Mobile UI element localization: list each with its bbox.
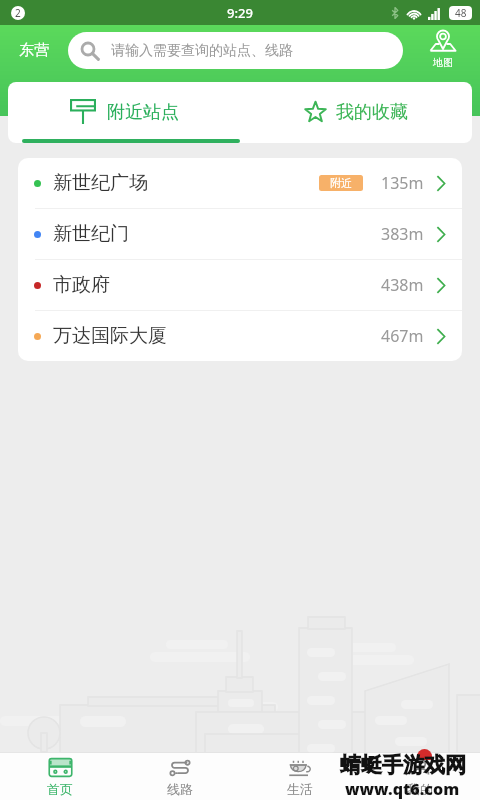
staticText: www.qt6.com xyxy=(345,778,460,800)
button[interactable]: 地图 xyxy=(414,30,472,69)
staticText: 2 xyxy=(15,6,21,20)
button[interactable]: 市政府 xyxy=(18,260,462,310)
staticText: 请输入需要查询的站点、线路 xyxy=(111,42,293,60)
staticText: 首页 xyxy=(47,781,73,797)
staticText: 附近 xyxy=(330,176,352,190)
button[interactable]: 线路 xyxy=(120,753,240,800)
staticText: 438m xyxy=(381,274,424,296)
staticText: 附近站点 xyxy=(107,101,179,124)
staticText: 线路 xyxy=(167,781,193,797)
button[interactable]: 我的收藏 xyxy=(240,82,472,143)
button[interactable]: 万达国际大厦 xyxy=(18,311,462,361)
staticText: 我的收藏 xyxy=(336,101,408,124)
staticText: 9:29 xyxy=(227,4,253,22)
staticText: 135m xyxy=(381,172,424,194)
staticText: 383m xyxy=(381,223,424,245)
button[interactable]: 附近站点 xyxy=(8,82,240,143)
button[interactable]: 我的 xyxy=(360,753,480,800)
staticText: 地图 xyxy=(433,56,453,69)
button[interactable]: 请输入需要查询的站点、线路 xyxy=(68,32,403,69)
staticText: 新世纪门 xyxy=(53,222,129,246)
staticText: 467m xyxy=(381,325,424,347)
button[interactable]: 生活 xyxy=(240,753,360,800)
button[interactable]: 首页 xyxy=(0,753,120,800)
staticText: 万达国际大厦 xyxy=(53,324,167,348)
staticText: 东营 xyxy=(19,41,49,60)
button[interactable]: 新世纪门 xyxy=(18,209,462,259)
button[interactable]: 新世纪广场 xyxy=(18,158,462,208)
staticText: 蜻蜓手游戏网 xyxy=(340,752,466,778)
staticText: 48 xyxy=(455,6,467,20)
button[interactable]: 东营 xyxy=(0,32,68,69)
staticText: 新世纪广场 xyxy=(53,171,148,195)
staticText: 市政府 xyxy=(53,273,110,297)
staticText: 我的 xyxy=(407,781,433,797)
staticText: 生活 xyxy=(287,781,313,797)
